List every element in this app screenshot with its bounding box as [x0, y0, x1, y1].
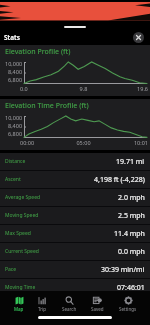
staticText: 10,000: [5, 114, 23, 121]
staticText: 10:01: [105, 139, 148, 146]
staticText: 30:39 min/mi: [101, 265, 145, 275]
staticText: 0.0: [20, 85, 62, 92]
staticText: Saved: [91, 306, 104, 312]
staticText: 19.71 mi: [116, 157, 145, 167]
staticText: Map: [14, 306, 24, 312]
staticText: 6,800: [8, 76, 23, 83]
staticText: Settings: [119, 306, 137, 312]
button[interactable]: Search: [61, 291, 78, 312]
button[interactable]: Settings: [118, 291, 138, 312]
staticText: 8,400: [8, 122, 23, 129]
button[interactable]: Average Speed: [0, 189, 150, 206]
button[interactable]: Close: [133, 32, 144, 43]
staticText: Search: [62, 306, 77, 312]
staticText: Trip: [38, 306, 47, 312]
button[interactable]: Current Speed: [0, 243, 150, 260]
staticText: 00:00: [20, 139, 62, 146]
staticText: 9.8: [62, 85, 105, 92]
button[interactable]: Moving Time: [0, 279, 150, 296]
staticText: Moving Speed: [5, 212, 39, 219]
staticText: Ascent: [5, 176, 21, 183]
staticText: 2.0 mph: [118, 193, 145, 203]
button[interactable]: Pace: [0, 261, 150, 278]
staticText: 10,000: [5, 60, 23, 67]
staticText: 4,198 ft (-4,228): [94, 175, 145, 185]
button[interactable]: Saved: [90, 291, 105, 312]
staticText: 07:46:01: [117, 283, 145, 293]
staticText: 05:00: [62, 139, 105, 146]
staticText: Max Speed: [5, 230, 31, 237]
staticText: 11.4 mph: [114, 229, 145, 239]
staticText: Moving Time: [5, 284, 36, 291]
button[interactable]: Moving Speed: [0, 207, 150, 224]
staticText: 0.0 mph: [118, 247, 145, 257]
staticText: 19.6: [105, 85, 148, 92]
button[interactable]: Trip: [37, 291, 48, 312]
staticText: Average Speed: [5, 194, 41, 201]
staticText: Pace: [5, 266, 17, 273]
button[interactable]: Distance: [0, 153, 150, 170]
button[interactable]: Ascent: [0, 171, 150, 188]
staticText: 6,800: [8, 130, 23, 137]
staticText: Current Speed: [5, 248, 39, 255]
staticText: Distance: [5, 158, 26, 165]
staticText: 8,400: [8, 68, 23, 75]
staticText: 2.5 mph: [118, 211, 145, 221]
button[interactable]: Map: [13, 291, 25, 312]
button[interactable]: Max Speed: [0, 225, 150, 242]
staticText: Stats: [4, 33, 20, 42]
staticText: Elevation Profile (ft): [5, 47, 71, 57]
staticText: Elevation Time Profile (ft): [5, 101, 89, 111]
